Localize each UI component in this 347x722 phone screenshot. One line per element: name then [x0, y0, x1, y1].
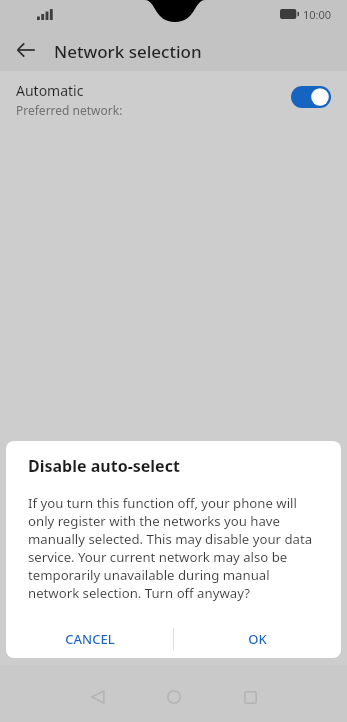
button[interactable]: Back — [82, 681, 114, 713]
staticText: OK — [248, 630, 267, 648]
staticText: 10:00 — [303, 7, 332, 22]
staticText: Network selection — [54, 40, 202, 63]
staticText: If you turn this function off, your phon… — [28, 494, 318, 602]
staticText: Automatic — [16, 81, 84, 100]
button[interactable]: Home — [158, 681, 190, 713]
staticText: Disable auto-select — [28, 455, 180, 477]
staticText: CANCEL — [65, 630, 115, 648]
staticText: Preferred network: — [16, 102, 123, 118]
button[interactable]: Automatic network selection toggle — [291, 86, 331, 108]
button[interactable]: Automatic — [0, 71, 347, 121]
button[interactable]: Recent apps — [234, 681, 266, 713]
button[interactable]: Back — [10, 34, 42, 66]
button[interactable]: CANCEL — [6, 619, 173, 658]
button[interactable]: OK — [174, 619, 341, 658]
